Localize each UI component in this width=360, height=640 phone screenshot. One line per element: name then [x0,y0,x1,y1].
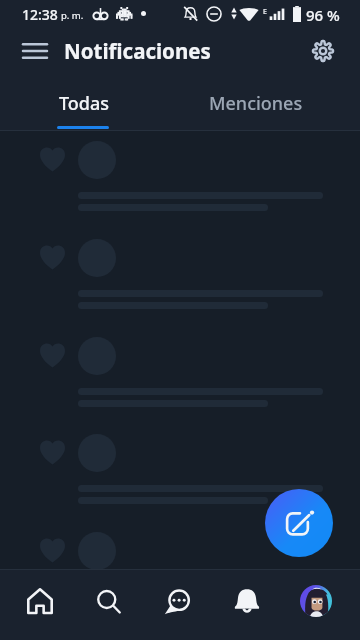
button[interactable]: Settings [303,31,343,71]
button[interactable]: Notificaciones [212,570,281,632]
button[interactable]: Menciones [184,75,328,131]
staticText: Menciones [209,91,303,116]
button[interactable]: Menu [13,31,53,71]
button[interactable]: Inicio [5,570,74,632]
staticText: 96 % [306,5,340,25]
staticText: 12:38 [22,5,58,24]
staticText: p. m. [61,9,84,22]
staticText: Todas [59,91,110,116]
staticText: E [263,7,267,17]
button[interactable]: Perfil [281,570,350,632]
button[interactable]: Mensajes [143,570,212,632]
button[interactable]: Redactar [265,489,333,557]
staticText: Notificaciones [64,37,211,65]
button[interactable]: Buscar [74,570,143,632]
button[interactable]: Todas [12,75,156,131]
